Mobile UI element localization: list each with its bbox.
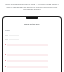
button[interactable] <box>3 65 61 68</box>
staticText: Enjoy multiple exercises at once — Pract… <box>5 3 59 10</box>
staticText: Today <box>5 29 10 31</box>
button[interactable] <box>3 43 61 46</box>
button[interactable] <box>3 53 61 56</box>
button[interactable] <box>3 59 61 62</box>
staticText: Word of the day <box>24 23 40 26</box>
button[interactable] <box>3 33 61 37</box>
button[interactable] <box>3 37 61 41</box>
